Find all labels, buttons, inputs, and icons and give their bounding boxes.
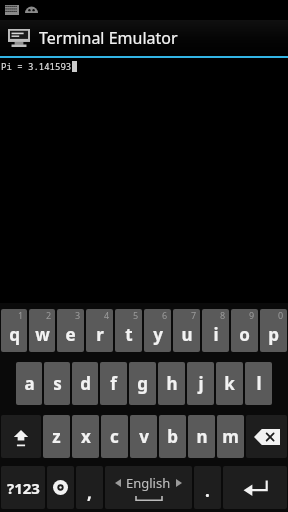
button[interactable]: l xyxy=(245,362,272,405)
staticText: u xyxy=(181,323,193,346)
button[interactable]: 9 xyxy=(231,309,258,352)
staticText: c xyxy=(110,425,119,448)
staticText: English xyxy=(126,474,171,492)
button[interactable]: 8 xyxy=(202,309,229,352)
button[interactable]: 1 xyxy=(1,309,27,352)
staticText: 3 xyxy=(75,309,81,321)
button[interactable]: k xyxy=(216,362,243,405)
staticText: Terminal Emulator xyxy=(39,27,178,49)
staticText: j xyxy=(198,372,204,395)
staticText: f xyxy=(110,372,117,395)
staticText: 6 xyxy=(162,309,168,321)
staticText: . xyxy=(205,479,210,502)
staticText: i xyxy=(213,323,219,346)
button[interactable]: x xyxy=(72,415,99,458)
button[interactable]: 5 xyxy=(115,309,142,352)
button[interactable]: ?123 xyxy=(1,466,45,509)
staticText: g xyxy=(137,372,148,395)
button[interactable]: 0 xyxy=(260,309,287,352)
staticText: s xyxy=(53,372,62,395)
staticText: w xyxy=(35,323,50,346)
staticText: h xyxy=(166,372,178,395)
staticText: a xyxy=(24,372,35,395)
staticText: p xyxy=(268,323,279,346)
button[interactable]: , xyxy=(76,466,103,509)
button[interactable]: d xyxy=(72,362,98,405)
button[interactable]: 2 xyxy=(29,309,55,352)
button[interactable]: 6 xyxy=(144,309,171,352)
button[interactable]: v xyxy=(130,415,157,458)
staticText: k xyxy=(224,372,235,395)
staticText: n xyxy=(196,425,208,448)
staticText: 4 xyxy=(104,309,110,321)
button[interactable]: n xyxy=(188,415,215,458)
button[interactable]: b xyxy=(159,415,186,458)
button[interactable]: h xyxy=(158,362,185,405)
staticText: l xyxy=(256,372,262,395)
button[interactable]: . xyxy=(194,466,221,509)
staticText: 7 xyxy=(191,309,197,321)
button[interactable]: m xyxy=(217,415,244,458)
button[interactable]: c xyxy=(101,415,128,458)
staticText: q xyxy=(9,323,20,346)
staticText: , xyxy=(87,481,92,504)
button[interactable]: j xyxy=(187,362,214,405)
staticText: e xyxy=(65,323,76,346)
button[interactable]: a xyxy=(16,362,42,405)
staticText: 0 xyxy=(278,309,284,321)
button[interactable]: s xyxy=(44,362,70,405)
button[interactable]: 3 xyxy=(57,309,84,352)
staticText: v xyxy=(139,425,149,448)
button[interactable]: Enter xyxy=(223,466,287,509)
staticText: 9 xyxy=(249,309,255,321)
staticText: 1 xyxy=(18,309,24,321)
staticText: t xyxy=(125,323,133,346)
staticText: y xyxy=(153,323,163,346)
staticText: z xyxy=(52,425,61,448)
staticText: x xyxy=(81,425,91,448)
staticText: r xyxy=(96,323,104,346)
staticText: Pi = 3.141593 xyxy=(1,60,72,72)
staticText: m xyxy=(222,425,239,448)
staticText: d xyxy=(80,372,91,395)
staticText: b xyxy=(167,425,178,448)
button[interactable]: Shift xyxy=(1,415,41,458)
button[interactable]: Space, English xyxy=(105,466,192,509)
staticText: ?123 xyxy=(7,478,40,498)
button[interactable]: Backspace xyxy=(246,415,287,458)
button[interactable]: z xyxy=(43,415,70,458)
button[interactable]: 4 xyxy=(86,309,113,352)
button[interactable]: g xyxy=(129,362,156,405)
button[interactable]: f xyxy=(100,362,127,405)
staticText: 5 xyxy=(133,309,139,321)
staticText: 8 xyxy=(220,309,226,321)
button[interactable]: Terminal Emulator xyxy=(0,20,288,56)
button[interactable]: Settings xyxy=(47,466,74,509)
staticText: o xyxy=(239,323,250,346)
staticText: 2 xyxy=(46,309,52,321)
button[interactable]: 7 xyxy=(173,309,200,352)
